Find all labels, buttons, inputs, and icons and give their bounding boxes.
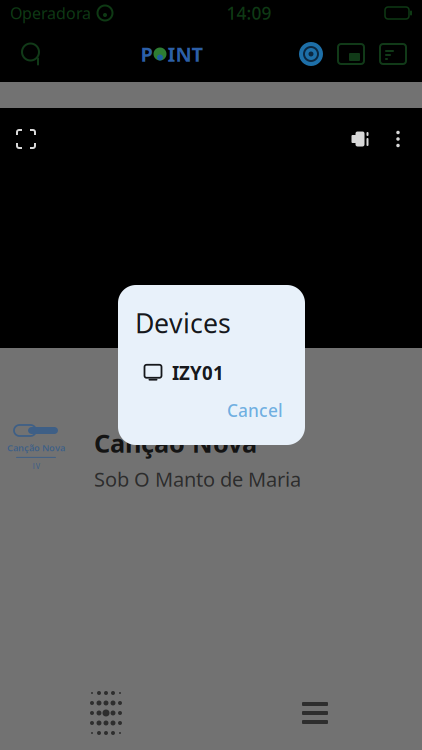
staticText: IZY01 xyxy=(172,360,224,385)
button[interactable]: Cancel xyxy=(217,391,293,430)
staticText: Cancel xyxy=(227,399,283,422)
button[interactable]: Picture in picture xyxy=(330,32,372,76)
staticText: Canção Nova xyxy=(7,441,65,454)
button[interactable]: More options xyxy=(380,119,416,159)
button[interactable]: Apps xyxy=(85,692,127,734)
staticText: 14:09 xyxy=(226,1,271,24)
staticText: Devices xyxy=(135,305,231,341)
staticText: Sob O Manto de Maria xyxy=(94,466,301,492)
button[interactable]: Full screen xyxy=(6,119,46,159)
button[interactable]: Menu xyxy=(292,692,338,734)
button[interactable]: Cast xyxy=(292,32,330,76)
staticText: Operadora xyxy=(10,2,91,24)
staticText: Canção Nova xyxy=(94,426,257,460)
button[interactable]: IZY01 xyxy=(118,341,305,383)
staticText: TV xyxy=(31,461,40,471)
staticText: P xyxy=(140,41,152,67)
button[interactable]: Screen cast xyxy=(372,32,414,76)
button[interactable]: Volume xyxy=(340,119,380,159)
button[interactable]: Search xyxy=(8,32,52,76)
staticText: INT xyxy=(167,41,203,67)
